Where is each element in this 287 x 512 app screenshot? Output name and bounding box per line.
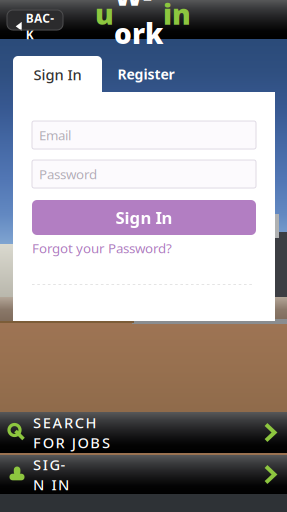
button[interactable]: Back <box>7 10 63 30</box>
staticText: Sign In <box>33 64 81 84</box>
staticText: SIGN IN <box>33 454 73 494</box>
staticText: SEARCH FOR JOBS <box>33 412 135 452</box>
staticText: u <box>95 0 114 33</box>
button[interactable]: Register <box>102 56 190 92</box>
staticText: Register <box>117 64 174 84</box>
staticText: in <box>163 0 191 33</box>
staticText: Password <box>39 165 97 183</box>
staticText: Email <box>39 126 71 144</box>
button[interactable]: Forgot your Password? <box>32 239 232 257</box>
staticText: BACK <box>26 10 54 43</box>
button[interactable]: Password <box>32 160 256 188</box>
staticText: Work <box>114 0 163 52</box>
button[interactable]: Sign In <box>13 56 102 93</box>
staticText: Sign In <box>115 206 172 229</box>
button[interactable]: SIGN IN <box>0 455 287 494</box>
button[interactable]: Email <box>32 121 256 149</box>
button[interactable]: SEARCH FOR JOBS <box>0 412 287 453</box>
button[interactable]: Sign In <box>32 200 256 235</box>
staticText: Forgot your Password? <box>32 239 172 257</box>
